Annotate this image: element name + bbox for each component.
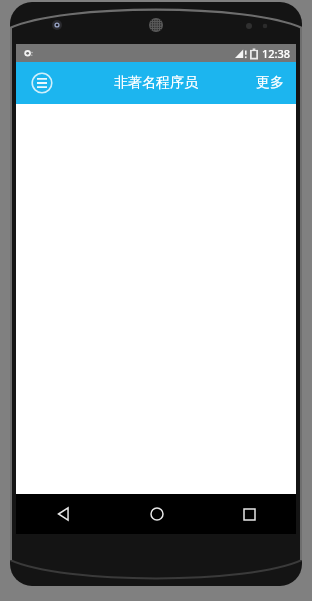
button[interactable]: Home — [110, 494, 203, 534]
button[interactable]: 更多 — [244, 66, 296, 100]
button[interactable]: Back — [16, 494, 110, 534]
button[interactable]: Menu — [30, 71, 54, 95]
staticText: 12:38 — [262, 46, 291, 61]
staticText: 非著名程序员 — [114, 74, 198, 92]
staticText: 更多 — [256, 74, 284, 92]
button[interactable]: Recent apps — [203, 494, 296, 534]
